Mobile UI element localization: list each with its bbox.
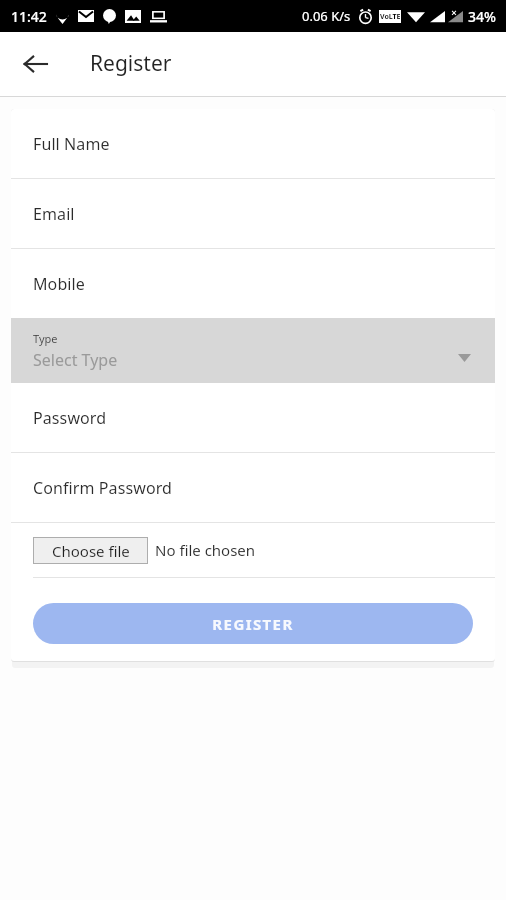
staticText: Register xyxy=(90,49,172,78)
staticText: Type xyxy=(33,331,58,346)
button[interactable]: Type xyxy=(11,318,495,383)
button[interactable]: Choose file xyxy=(33,537,148,564)
staticText: Select Type xyxy=(33,349,118,371)
staticText: Email xyxy=(33,203,75,225)
button[interactable]: REGISTER xyxy=(33,603,473,644)
button[interactable]: Back xyxy=(13,42,57,86)
staticText: Full Name xyxy=(33,133,110,155)
staticText: Password xyxy=(33,407,107,429)
staticText: No file chosen xyxy=(155,540,256,560)
staticText: 0.06 K/s xyxy=(302,7,351,25)
button[interactable]: Confirm Password xyxy=(11,453,495,522)
button[interactable]: Mobile xyxy=(11,249,495,318)
staticText: Mobile xyxy=(33,273,85,295)
button[interactable]: Email xyxy=(11,179,495,248)
button[interactable]: Full Name xyxy=(11,109,495,178)
staticText: REGISTER xyxy=(212,614,294,634)
button[interactable]: Password xyxy=(11,383,495,452)
staticText: 11:42 xyxy=(11,7,47,26)
staticText: 34% xyxy=(468,7,496,26)
staticText: Confirm Password xyxy=(33,477,173,499)
staticText: VoLTE xyxy=(380,12,401,22)
staticText: Choose file xyxy=(52,541,130,561)
